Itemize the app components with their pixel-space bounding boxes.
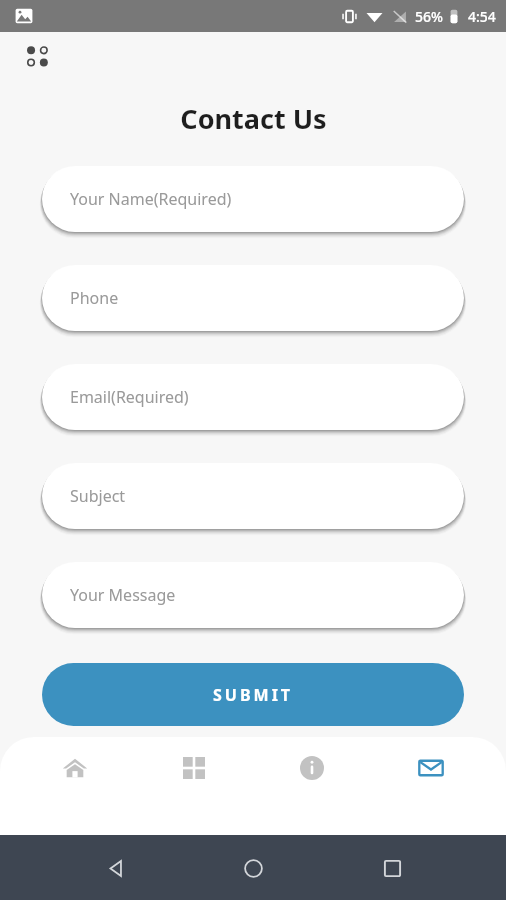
button[interactable]: SUBMIT (42, 663, 464, 726)
button[interactable]: Info (269, 739, 355, 797)
staticText: 4:54 (468, 7, 496, 26)
button[interactable]: Home (229, 844, 277, 892)
staticText: SUBMIT (213, 684, 294, 706)
staticText: 56% (415, 7, 443, 26)
button[interactable]: Your Message (42, 562, 464, 628)
button[interactable]: App logo menu (24, 42, 56, 74)
button[interactable]: Phone (42, 265, 464, 331)
staticText: Contact Us (180, 100, 327, 137)
button[interactable]: Your Name(Required) (42, 166, 464, 232)
staticText: Phone (70, 287, 119, 309)
button[interactable]: Recent apps (368, 844, 416, 892)
staticText: Subject (70, 485, 126, 507)
staticText: Email(Required) (70, 386, 189, 408)
button[interactable]: Back (91, 844, 139, 892)
button[interactable]: Home (32, 739, 118, 797)
button[interactable]: Contact (388, 739, 474, 797)
staticText: Your Name(Required) (70, 188, 232, 210)
staticText: Your Message (70, 584, 176, 606)
button[interactable]: Categories (151, 739, 237, 797)
button[interactable]: Subject (42, 463, 464, 529)
button[interactable]: Email(Required) (42, 364, 464, 430)
